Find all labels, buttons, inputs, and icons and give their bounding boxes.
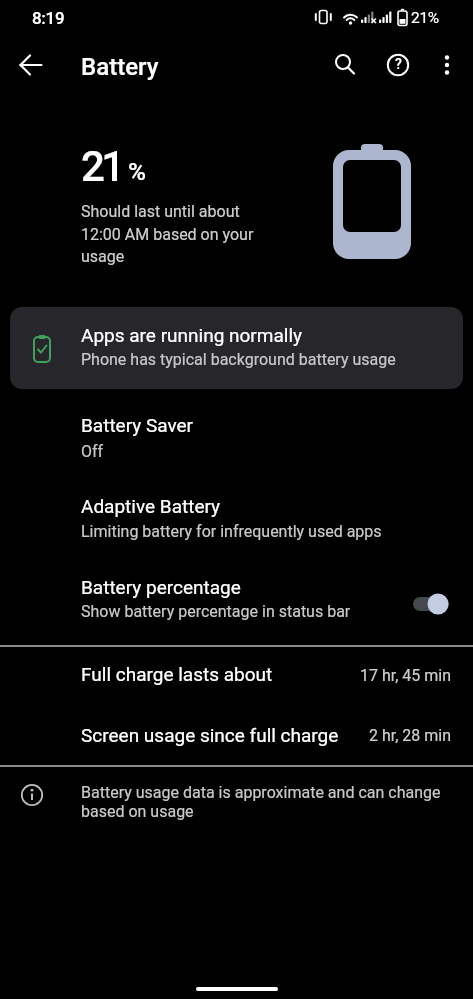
staticText: Adaptive Battery [81,495,221,517]
button[interactable] [323,43,367,87]
button[interactable]: Full charge lasts about [0,647,473,707]
staticText: Apps are running normally [81,324,303,346]
staticText: Limiting battery for infrequently used a… [81,522,382,541]
staticText: Show battery percentage in status bar [81,602,351,621]
button[interactable]: Adaptive Battery [0,481,473,561]
button[interactable]: ? [376,43,420,87]
staticText: Battery usage data is approximate and ca… [81,783,441,821]
staticText: ? [395,56,402,72]
button[interactable]: Apps are running normally [10,307,463,389]
staticText: Battery Saver [81,414,194,436]
staticText: 21% [411,9,439,27]
staticText: Off [81,442,104,461]
staticText: Battery [81,53,159,81]
button[interactable] [425,43,469,87]
staticText: 8:19 [32,8,65,28]
staticText: Should last until about 12:00 AM based o… [81,202,254,266]
button[interactable]: Battery percentage [0,561,473,645]
button[interactable] [9,43,53,87]
staticText: 21 [81,142,122,191]
staticText: Screen usage since full charge [81,724,339,746]
staticText: % [128,157,146,186]
button[interactable]: Battery Saver [0,403,473,481]
staticText: 2 hr, 28 min [369,726,452,745]
staticText: 17 hr, 45 min [360,666,452,685]
staticText: Full charge lasts about [81,663,273,685]
staticText: Phone has typical background battery usa… [81,350,396,369]
button[interactable]: Screen usage since full charge [0,707,473,767]
staticText: Battery percentage [81,576,241,598]
